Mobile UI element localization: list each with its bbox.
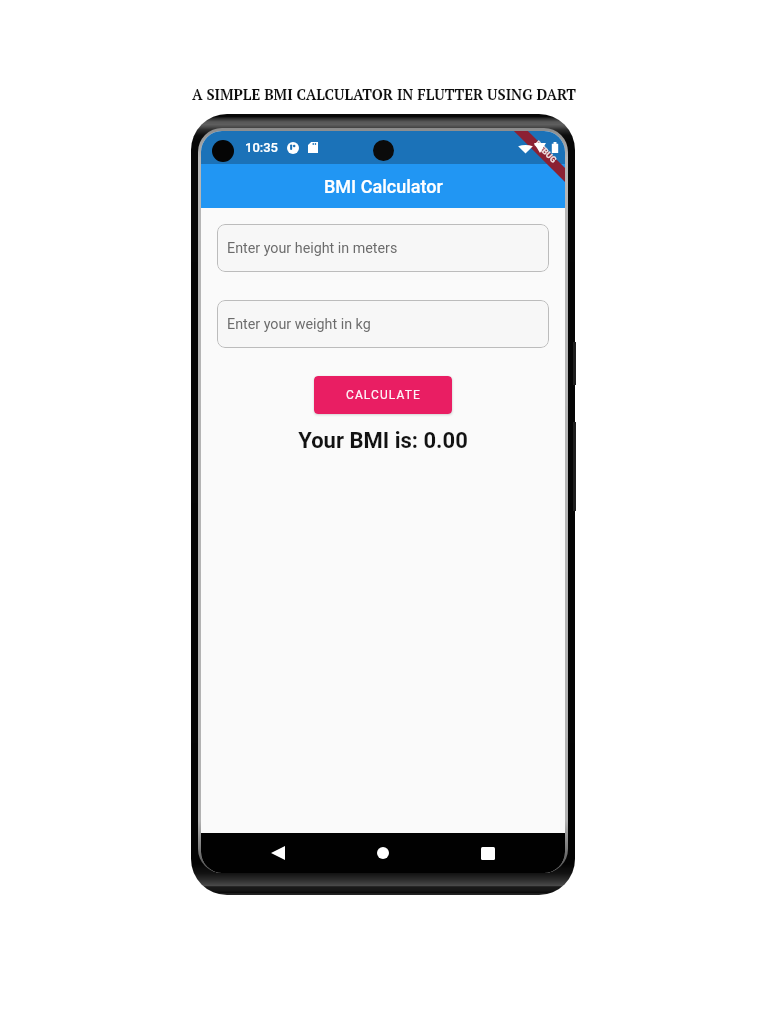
button[interactable]: Back — [256, 833, 300, 873]
button[interactable]: Home — [361, 833, 405, 873]
button[interactable]: Recents — [466, 833, 510, 873]
staticText: CALCULATE — [346, 388, 421, 402]
button[interactable]: Enter your weight in kg — [217, 300, 549, 348]
staticText: BMI Calculator — [324, 176, 443, 197]
staticText: A SIMPLE BMI CALCULATOR IN FLUTTER USING… — [0, 85, 768, 104]
staticText: DEBUG — [533, 139, 559, 165]
button[interactable]: CALCULATE — [314, 376, 452, 414]
staticText: Enter your height in meters — [227, 240, 398, 257]
staticText: Enter your weight in kg — [227, 316, 371, 333]
staticText: 10:35 — [245, 140, 279, 155]
button[interactable]: Enter your height in meters — [217, 224, 549, 272]
staticText: Your BMI is: 0.00 — [201, 428, 565, 454]
